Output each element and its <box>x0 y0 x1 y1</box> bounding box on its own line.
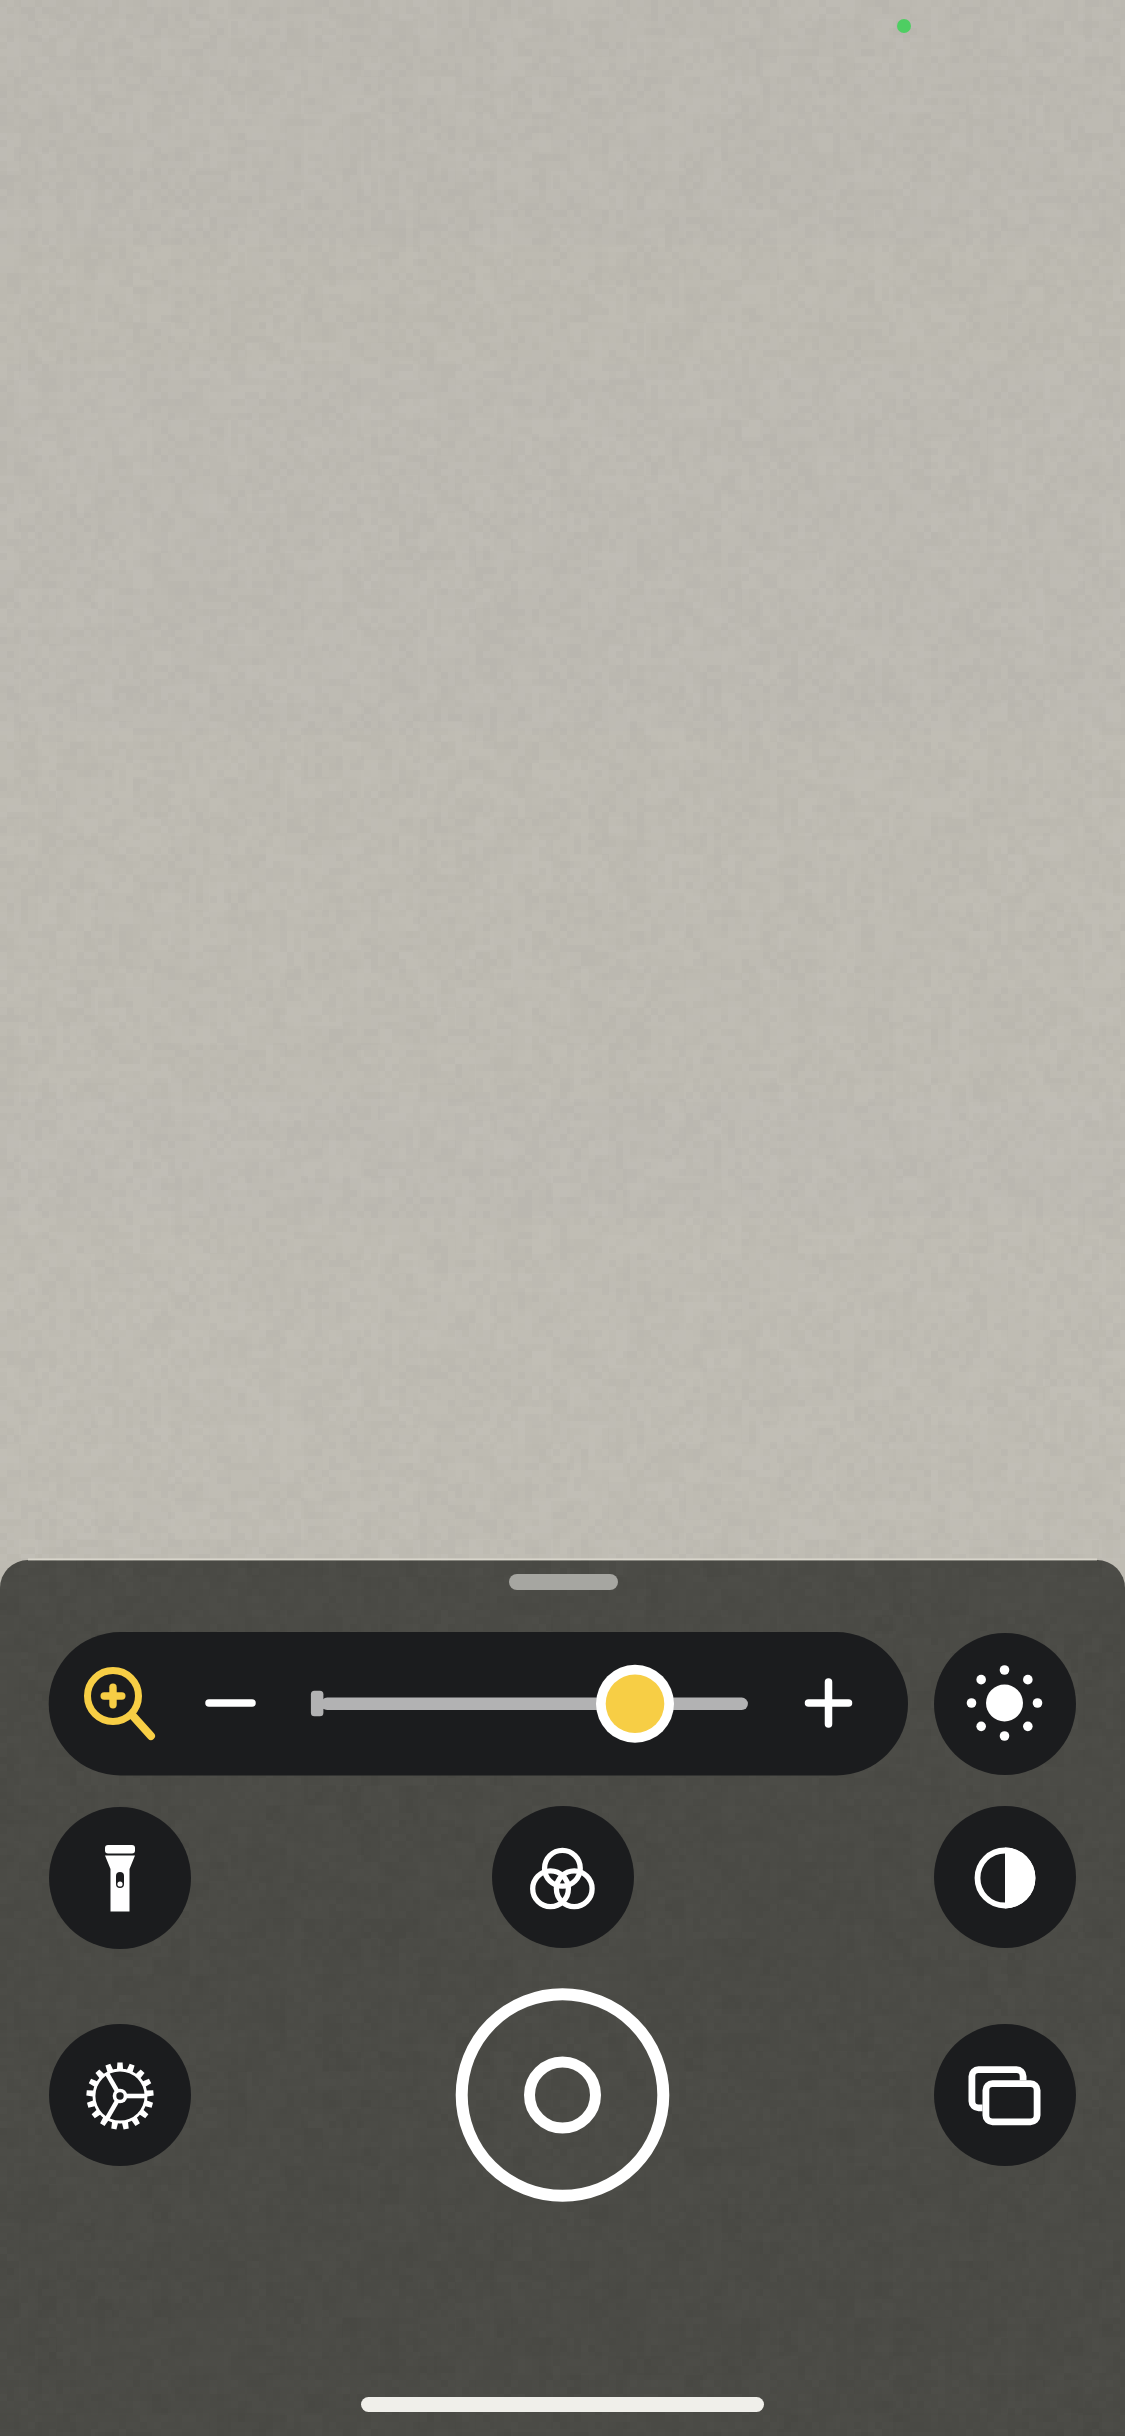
button[interactable]: Flashlight <box>49 1807 191 1949</box>
button[interactable]: Color filters <box>492 1806 634 1948</box>
button[interactable]: Brightness <box>934 1633 1076 1775</box>
button[interactable]: Gallery <box>934 2024 1076 2166</box>
button[interactable]: Zoom <box>63 1646 163 1746</box>
button[interactable]: Zoom in <box>789 1663 869 1743</box>
button[interactable]: Contrast <box>934 1806 1076 1948</box>
button[interactable]: Settings <box>49 2024 191 2166</box>
button[interactable]: Zoom out <box>191 1663 271 1743</box>
button[interactable]: Capture <box>456 1989 668 2201</box>
